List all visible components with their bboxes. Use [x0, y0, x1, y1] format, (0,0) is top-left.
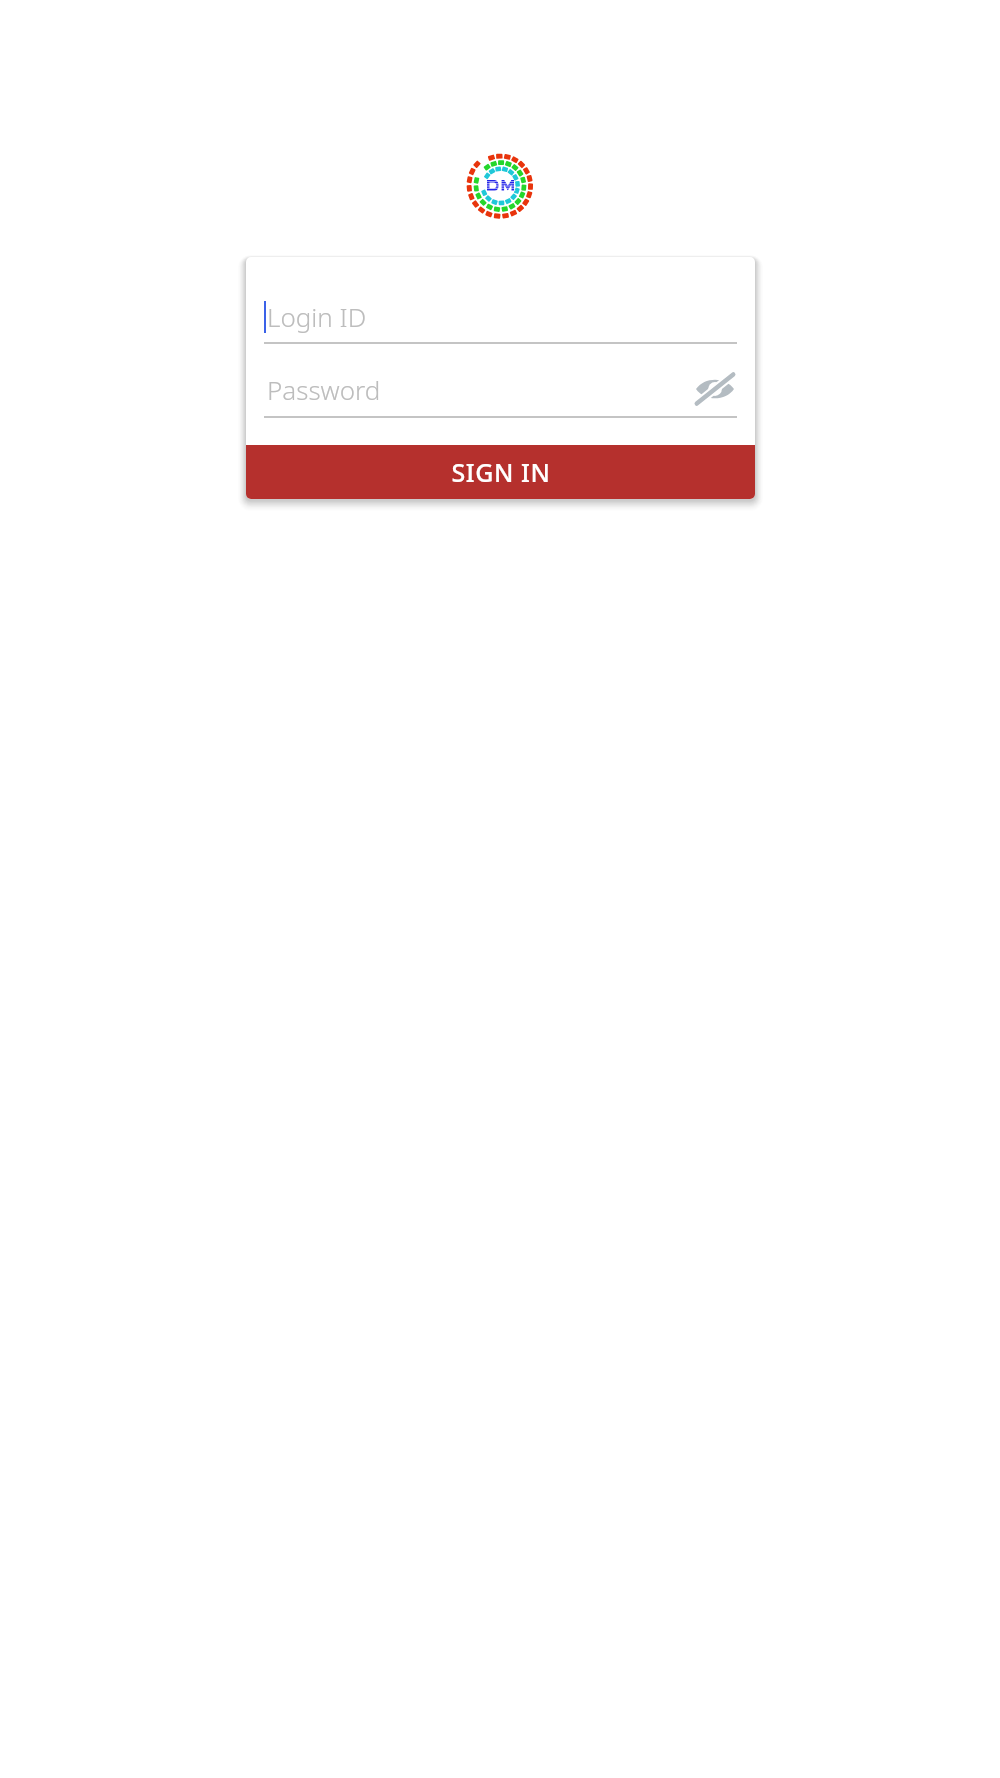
staticText: Password: [267, 372, 381, 407]
button[interactable]: SIGN IN: [246, 445, 755, 499]
staticText: Login ID: [267, 299, 367, 334]
button[interactable]: Login ID: [264, 281, 737, 344]
button[interactable]: Password: [264, 355, 737, 418]
button[interactable]: Show password: [693, 370, 737, 408]
staticText: SIGN IN: [451, 455, 551, 489]
